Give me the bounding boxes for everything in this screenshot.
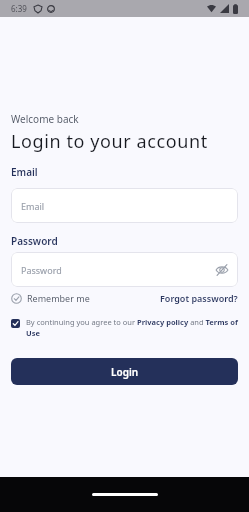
button[interactable]: Login bbox=[11, 358, 238, 385]
staticText: Email bbox=[11, 165, 38, 179]
staticText: Email bbox=[21, 200, 45, 212]
staticText: Password bbox=[11, 234, 58, 248]
button[interactable]: Password bbox=[11, 252, 238, 287]
staticText: Welcome back bbox=[11, 112, 79, 126]
button[interactable]: By continuing you agree to our Privacy p… bbox=[11, 317, 238, 338]
staticText: Login to your account bbox=[11, 129, 208, 154]
button[interactable]: Remember me bbox=[11, 292, 90, 304]
staticText: Login bbox=[111, 365, 139, 379]
staticText: Password bbox=[21, 264, 62, 276]
button[interactable]: Forgot password? bbox=[160, 292, 238, 304]
staticText: 6:39 bbox=[11, 3, 27, 14]
staticText: By continuing you agree to our Privacy p… bbox=[26, 317, 238, 338]
staticText: Remember me bbox=[27, 292, 90, 304]
button[interactable]: Email bbox=[11, 188, 238, 223]
